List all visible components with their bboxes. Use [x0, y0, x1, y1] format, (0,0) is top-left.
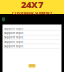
staticText: Support topic — [4, 44, 23, 48]
staticText: Support topic — [4, 40, 23, 43]
staticText: Support topic — [4, 31, 23, 35]
staticText: 24X7 — [21, 0, 43, 10]
staticText: CUSTOMER SUPPORT — [12, 10, 52, 16]
staticText: Support topic — [4, 27, 23, 30]
staticText: Support topic — [4, 35, 23, 39]
